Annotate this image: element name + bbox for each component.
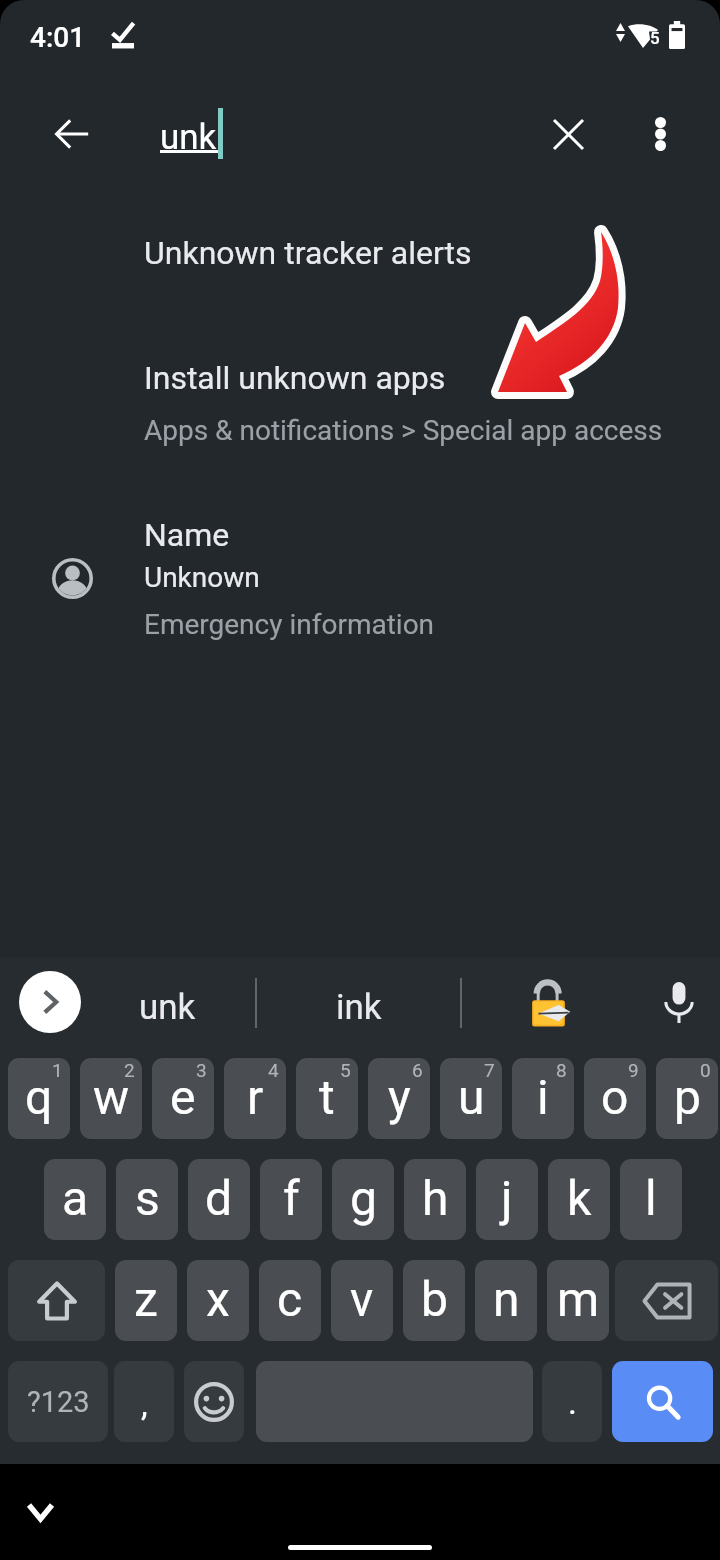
staticText: y [388, 1069, 411, 1125]
staticText: k [567, 1170, 592, 1226]
button[interactable]: r [224, 1058, 286, 1139]
button[interactable]: f [260, 1159, 322, 1240]
staticText: f [283, 1170, 300, 1226]
button[interactable] [0, 210, 720, 310]
staticText: h [422, 1170, 449, 1226]
staticText: 2 [124, 1059, 135, 1081]
button[interactable]: t [296, 1058, 358, 1139]
button[interactable]: Hide keyboard [10, 1482, 70, 1542]
staticText: Name [144, 516, 230, 554]
staticText: w [93, 1069, 130, 1125]
button[interactable]: Clear search [532, 98, 604, 170]
staticText: 1 [52, 1059, 63, 1081]
staticText: i [537, 1069, 549, 1125]
staticText: p [674, 1069, 701, 1125]
staticText: Unknown [144, 561, 260, 594]
staticText: m [557, 1271, 600, 1327]
staticText: 6 [412, 1059, 423, 1081]
staticText: n [493, 1271, 520, 1327]
staticText: 8 [556, 1059, 567, 1081]
button[interactable]: More options [624, 98, 696, 170]
button[interactable]: i [512, 1058, 574, 1139]
button[interactable]: Voice input [647, 970, 711, 1034]
staticText: 4 [268, 1059, 279, 1081]
button[interactable]: Search [612, 1361, 713, 1442]
button[interactable]: Back [36, 98, 108, 170]
button[interactable] [515, 968, 587, 1040]
button[interactable]: Backspace [615, 1260, 718, 1341]
button[interactable]: g [332, 1159, 394, 1240]
staticText: r [247, 1069, 264, 1125]
button[interactable]: o [584, 1058, 646, 1139]
staticText: d [205, 1170, 233, 1226]
button[interactable]: h [404, 1159, 466, 1240]
button[interactable]: l [620, 1159, 682, 1240]
staticText: 9 [628, 1059, 639, 1081]
staticText: unk [160, 117, 217, 158]
button[interactable]: m [547, 1260, 609, 1341]
button[interactable]: p [656, 1058, 718, 1139]
button[interactable]: b [403, 1260, 465, 1341]
button[interactable]: k [548, 1159, 610, 1240]
staticText: x [206, 1271, 230, 1327]
staticText: Apps & notifications > Special app acces… [144, 414, 663, 447]
staticText: 5 [650, 28, 660, 48]
staticText: b [421, 1271, 448, 1327]
button[interactable]: y [368, 1058, 430, 1139]
staticText: 4:01 [30, 21, 86, 54]
staticText: c [277, 1271, 303, 1327]
button[interactable]: More suggestions [19, 971, 81, 1033]
button[interactable]: x [187, 1260, 249, 1341]
button[interactable]: Emoji [184, 1361, 244, 1442]
button[interactable]: a [44, 1159, 106, 1240]
button[interactable]: e [152, 1058, 214, 1139]
staticText: t [319, 1069, 335, 1125]
button[interactable] [0, 340, 720, 460]
staticText: s [135, 1170, 160, 1226]
staticText: e [170, 1069, 196, 1125]
button[interactable] [0, 500, 720, 660]
staticText: o [601, 1069, 629, 1125]
button[interactable]: z [115, 1260, 177, 1341]
button[interactable]: unk [81, 957, 253, 1058]
button[interactable]: j [476, 1159, 538, 1240]
staticText: Install unknown apps [144, 359, 446, 397]
staticText: 5 [340, 1059, 351, 1081]
button[interactable]: u [440, 1058, 502, 1139]
staticText: , [141, 1384, 148, 1424]
button[interactable]: c [259, 1260, 321, 1341]
button[interactable]: ?123 [8, 1361, 108, 1442]
button[interactable]: , [114, 1361, 174, 1442]
button[interactable]: Shift [8, 1260, 105, 1341]
staticText: q [25, 1069, 53, 1125]
staticText: z [134, 1271, 158, 1327]
staticText: Unknown tracker alerts [144, 234, 472, 272]
staticText: a [62, 1170, 89, 1226]
staticText: 0 [700, 1059, 711, 1081]
staticText: j [501, 1170, 513, 1226]
staticText: Emergency information [144, 608, 435, 641]
staticText: unk [139, 987, 196, 1028]
button[interactable]: s [116, 1159, 178, 1240]
button[interactable]: d [188, 1159, 250, 1240]
staticText: 7 [484, 1059, 495, 1081]
button[interactable]: q [8, 1058, 70, 1139]
button[interactable]: ink [258, 957, 459, 1058]
staticText: 3 [196, 1059, 207, 1081]
staticText: v [350, 1271, 374, 1327]
staticText: g [350, 1170, 377, 1226]
staticText: . [568, 1382, 577, 1422]
staticText: l [645, 1170, 657, 1226]
button[interactable]: . [542, 1361, 602, 1442]
button[interactable]: v [331, 1260, 393, 1341]
staticText: ink [336, 987, 382, 1028]
button[interactable]: w [80, 1058, 142, 1139]
staticText: ?123 [27, 1385, 90, 1419]
button[interactable]: n [475, 1260, 537, 1341]
staticText: u [458, 1069, 485, 1125]
